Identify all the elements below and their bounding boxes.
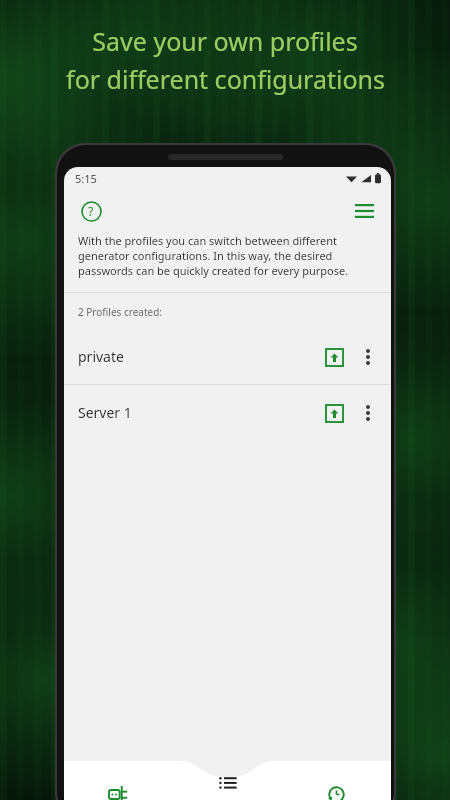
button[interactable]: More options bbox=[351, 340, 385, 374]
button[interactable]: History bbox=[282, 761, 391, 800]
button[interactable]: Server 1 bbox=[64, 385, 391, 440]
staticText: private bbox=[78, 347, 317, 366]
button[interactable]: Generator bbox=[64, 761, 173, 800]
button[interactable]: Help bbox=[74, 194, 108, 228]
staticText: for different configurations bbox=[66, 62, 385, 96]
button[interactable]: Export profile bbox=[317, 396, 351, 430]
staticText: Server 1 bbox=[78, 403, 317, 422]
staticText: ? bbox=[88, 203, 94, 219]
button[interactable]: Export profile bbox=[317, 340, 351, 374]
button[interactable]: More options bbox=[351, 396, 385, 430]
button[interactable]: Profiles bbox=[173, 761, 282, 800]
button[interactable]: Menu bbox=[347, 194, 381, 228]
staticText: 5:15 bbox=[75, 171, 97, 186]
staticText: Save your own profiles bbox=[92, 24, 358, 58]
staticText: With the profiles you can switch between… bbox=[78, 233, 377, 278]
staticText: 2 Profiles created: bbox=[78, 305, 163, 319]
button[interactable]: private bbox=[64, 329, 391, 384]
